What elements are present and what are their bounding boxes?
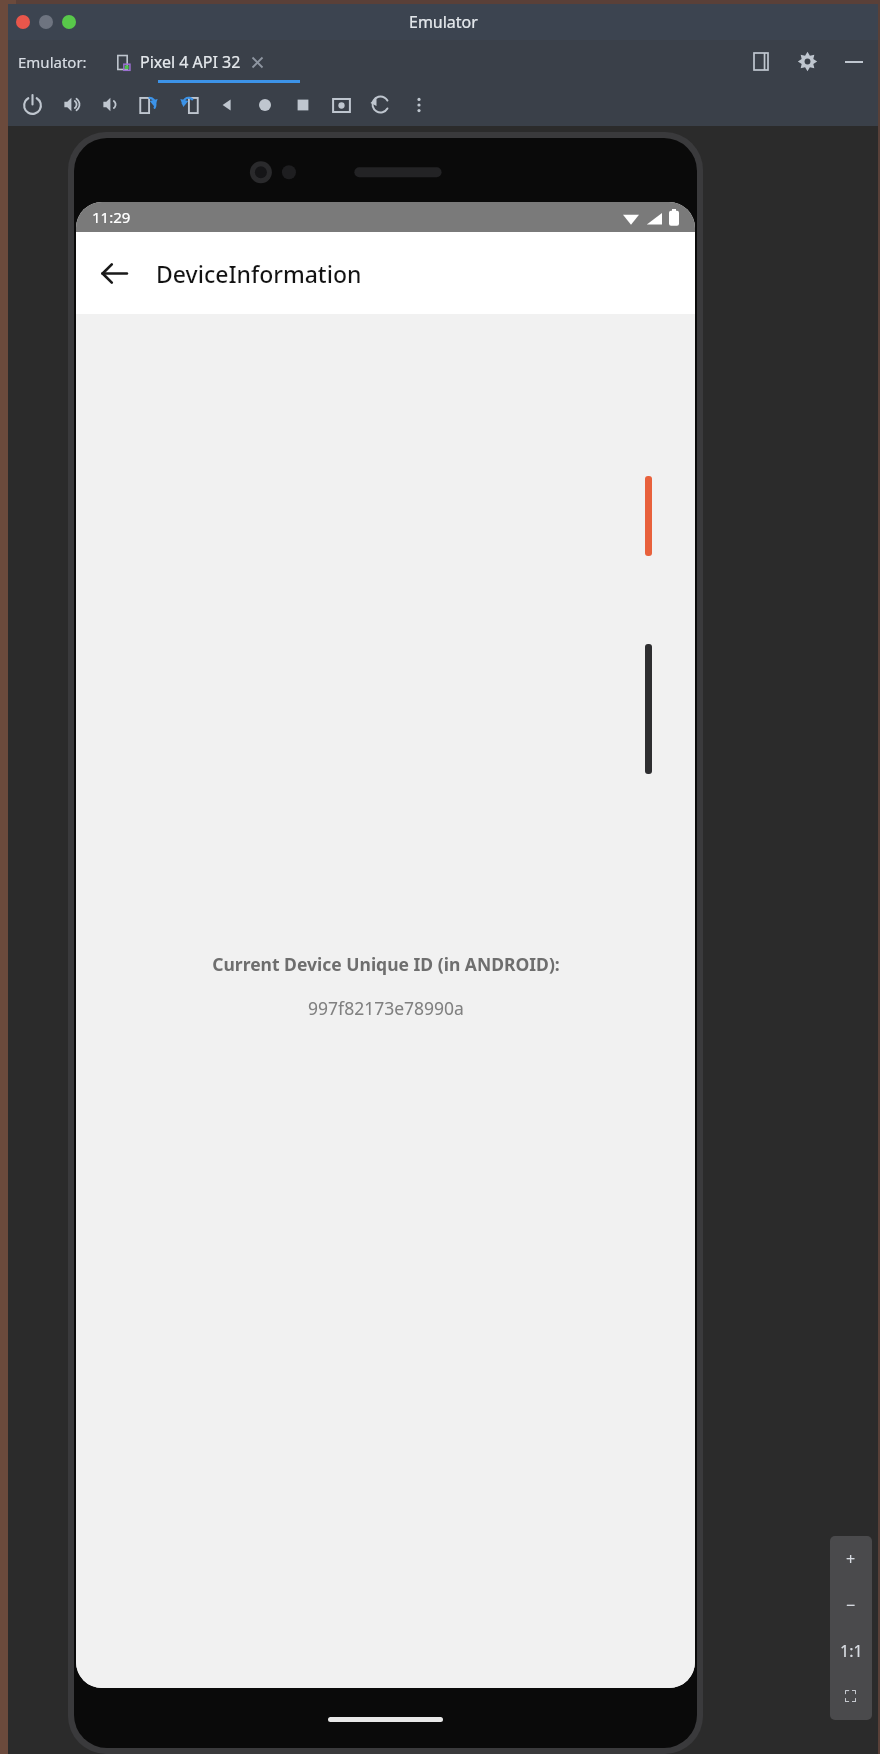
staticText: Emulator: [18,52,87,72]
button[interactable]: Screenshot [331,94,352,115]
button[interactable]: Back [217,95,237,115]
button[interactable] [16,15,30,29]
staticText: ⛶ [845,1689,857,1705]
button[interactable]: Rotate left [139,94,160,115]
button[interactable]: Rotate right [178,94,199,115]
button[interactable]: More [409,95,429,115]
staticText: DeviceInformation [156,258,362,289]
button[interactable] [39,15,53,29]
button[interactable]: Back [86,245,142,301]
button[interactable]: Pixel 4 API 32 [115,51,264,73]
button[interactable]: Zoom ⛶ [830,1674,872,1720]
staticText: − [846,1594,856,1616]
staticText: + [846,1548,856,1570]
button[interactable]: Panel [752,52,771,71]
button[interactable]: Zoom + [830,1536,872,1582]
button[interactable]: Zoom − [830,1582,872,1628]
staticText: 997f82173e78990a [308,996,464,1020]
staticText: 11:29 [92,207,131,227]
button[interactable]: Home [255,95,275,115]
staticText: Pixel 4 API 32 [140,51,241,73]
button[interactable]: Volume up [61,94,82,115]
button[interactable]: Power [22,94,43,115]
button[interactable]: Minimize [844,52,864,72]
staticText: 1:1 [840,1640,863,1662]
button[interactable]: Volume down [100,94,121,115]
button[interactable]: Close tab [251,56,264,69]
button[interactable]: Settings [797,51,818,72]
button[interactable]: Zoom 1:1 [830,1628,872,1674]
button[interactable]: Record [370,94,391,115]
button[interactable]: Overview [293,95,313,115]
staticText: Emulator [409,11,478,33]
staticText: Current Device Unique ID (in ANDROID): [212,952,560,976]
button[interactable] [62,15,76,29]
